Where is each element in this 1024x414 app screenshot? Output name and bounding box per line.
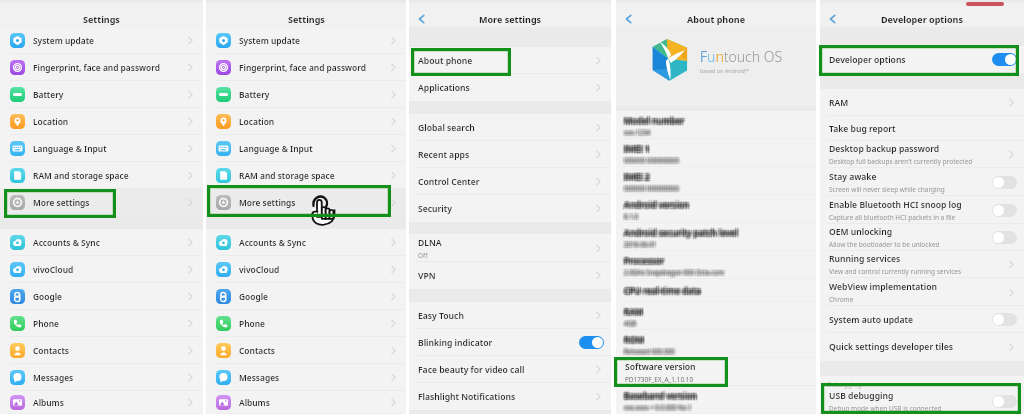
staticText: CPU real-time data: [623, 287, 700, 298]
button[interactable]: Blinking indicator: [409, 329, 611, 356]
button[interactable]: Running services: [820, 251, 1024, 278]
staticText: 8.1.0: [625, 211, 639, 219]
staticText: IMEI 1: [625, 145, 651, 156]
button[interactable]: Toggle: [992, 204, 1017, 217]
staticText: Baseband version: [626, 391, 699, 402]
button[interactable]: WebView implementation: [820, 278, 1024, 306]
staticText: 4GB: [625, 320, 638, 328]
button[interactable]: Contacts: [0, 337, 203, 364]
button[interactable]: Stay awake: [820, 168, 1024, 196]
button[interactable]: Phone: [206, 310, 406, 337]
staticText: Processor: [625, 257, 666, 268]
button[interactable]: Back: [823, 10, 841, 28]
button[interactable]: Security: [409, 195, 611, 222]
button[interactable]: RAM: [820, 89, 1024, 116]
button[interactable]: Back: [412, 10, 430, 28]
button[interactable]: Toggle: [579, 336, 604, 349]
staticText: RAM and storage space: [239, 170, 335, 181]
button[interactable]: Take bug report: [820, 116, 1024, 141]
staticText: Released 000.000: [625, 346, 676, 354]
button[interactable]: Contacts: [206, 337, 406, 364]
staticText: vivoCloud: [33, 264, 74, 275]
staticText: xxx-1234: [625, 129, 651, 137]
button[interactable]: Quick settings developer tiles: [820, 333, 1024, 361]
button[interactable]: vivoCloud: [206, 256, 406, 283]
button[interactable]: Toggle: [992, 176, 1017, 189]
button[interactable]: Language & Input: [0, 135, 203, 162]
button[interactable]: DLNA: [409, 234, 611, 262]
staticText: Android version: [624, 198, 689, 209]
button[interactable]: Phone: [0, 310, 203, 337]
staticText: 4GB: [622, 318, 635, 326]
button[interactable]: Toggle: [992, 313, 1017, 326]
staticText: 2018-06-01: [624, 240, 657, 248]
button[interactable]: Toggle: [992, 231, 1017, 244]
staticText: 000000 000000000: [625, 182, 680, 190]
button[interactable]: Toggle: [992, 395, 1017, 408]
button[interactable]: About phone: [409, 47, 611, 74]
button[interactable]: Albums: [206, 391, 406, 414]
button[interactable]: USB debugging: [820, 389, 1024, 414]
button[interactable]: Recent apps: [409, 141, 611, 168]
staticText: Processor: [622, 256, 663, 267]
button[interactable]: System auto update: [820, 306, 1024, 333]
button[interactable]: Control Center: [409, 168, 611, 195]
staticText: RAM: [829, 97, 849, 109]
button[interactable]: RAM and storage space: [206, 162, 406, 189]
staticText: 000000 000000000: [625, 158, 680, 166]
staticText: IMEI 1: [624, 143, 650, 154]
staticText: IMEI 1: [623, 143, 649, 154]
button[interactable]: Face beauty for video call: [409, 356, 611, 383]
button[interactable]: Software version: [616, 358, 816, 386]
button[interactable]: Applications: [409, 74, 611, 101]
button[interactable]: Accounts & Sync: [0, 229, 203, 256]
button[interactable]: Location: [0, 108, 203, 135]
button[interactable]: Global search: [409, 114, 611, 141]
staticText: Processor: [623, 257, 664, 268]
staticText: RAM: [625, 306, 644, 317]
button[interactable]: Location: [206, 108, 406, 135]
button[interactable]: Battery: [0, 81, 203, 108]
staticText: Quick settings developer tiles: [829, 341, 953, 353]
staticText: xxx.xxxx + 0.0.000 No.1: [623, 402, 691, 410]
button[interactable]: More settings: [206, 189, 406, 216]
button[interactable]: Google: [206, 283, 406, 310]
staticText: Android security patch level: [623, 226, 737, 237]
staticText: 8.1.0: [625, 213, 639, 221]
button[interactable]: More settings: [0, 189, 203, 216]
button[interactable]: Messages: [206, 364, 406, 391]
button[interactable]: Messages: [0, 364, 203, 391]
button[interactable]: Desktop backup password: [820, 141, 1024, 168]
staticText: 000000 000000000: [623, 157, 678, 165]
button[interactable]: Easy Touch: [409, 302, 611, 329]
button[interactable]: System update: [206, 27, 406, 54]
staticText: IMEI 1: [623, 145, 649, 156]
button[interactable]: System update: [0, 27, 203, 54]
staticText: 8.1.0: [625, 212, 639, 220]
button[interactable]: Accounts & Sync: [206, 229, 406, 256]
staticText: Enable Bluetooth HCI snoop log: [829, 199, 962, 211]
staticText: CPU real-time data: [625, 286, 702, 297]
button[interactable]: Albums: [0, 391, 203, 414]
button[interactable]: Battery: [206, 81, 406, 108]
button[interactable]: Fingerprint, face and password: [0, 54, 203, 81]
staticText: xxx.xxxx + 0.0.000 No.1: [625, 405, 693, 413]
button[interactable]: vivoCloud: [0, 256, 203, 283]
button[interactable]: Language & Input: [206, 135, 406, 162]
staticText: xxx.xxxx + 0.0.000 No.1: [626, 404, 694, 412]
staticText: Baseband version: [625, 392, 698, 403]
staticText: Baseband version: [622, 389, 695, 400]
staticText: 000000 000000000: [623, 158, 678, 166]
button[interactable]: Toggle: [992, 53, 1017, 66]
button[interactable]: Developer options: [820, 46, 1024, 73]
button[interactable]: Google: [0, 283, 203, 310]
button[interactable]: VPN: [409, 262, 611, 289]
button[interactable]: OEM unlocking: [820, 224, 1024, 251]
staticText: ROM: [622, 333, 642, 344]
button[interactable]: Back: [619, 10, 637, 28]
button[interactable]: Enable Bluetooth HCI snoop log: [820, 196, 1024, 224]
button[interactable]: Fingerprint, face and password: [206, 54, 406, 81]
button[interactable]: Flashlight Notifications: [409, 383, 611, 410]
button[interactable]: RAM and storage space: [0, 162, 203, 189]
staticText: 000000 000000000: [625, 183, 680, 191]
